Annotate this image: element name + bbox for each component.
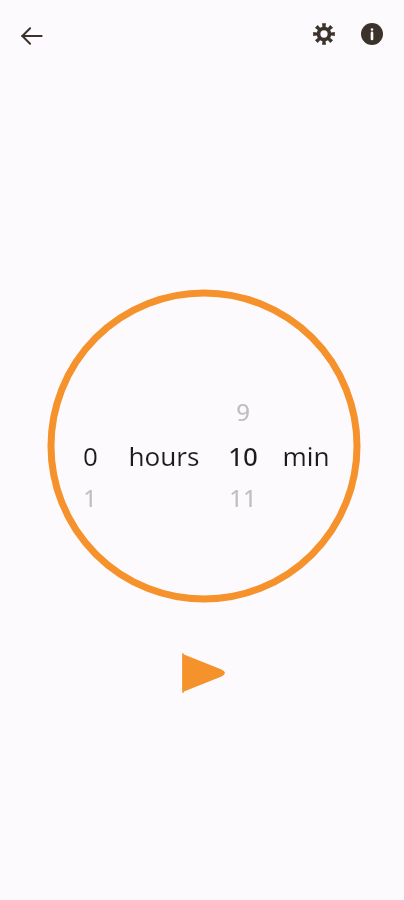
staticText: 0 [83,438,98,468]
staticText: 9 [236,395,250,425]
staticText: 10 [228,438,258,468]
button[interactable]: Back [8,12,56,60]
button[interactable]: Settings [302,12,346,56]
button[interactable]: hours [124,438,204,468]
button[interactable]: 10 [213,438,273,468]
button[interactable]: Info [350,12,394,56]
staticText: hours [128,438,200,468]
button[interactable]: 0 [60,438,120,468]
button[interactable]: 9 [213,395,273,425]
button[interactable]: 11 [213,481,273,511]
button[interactable]: min [276,438,336,468]
staticText: min [282,438,330,468]
button[interactable]: 1 [60,481,120,511]
staticText: 11 [229,481,257,511]
button[interactable]: Start timer [162,630,248,716]
staticText: 1 [83,481,97,511]
